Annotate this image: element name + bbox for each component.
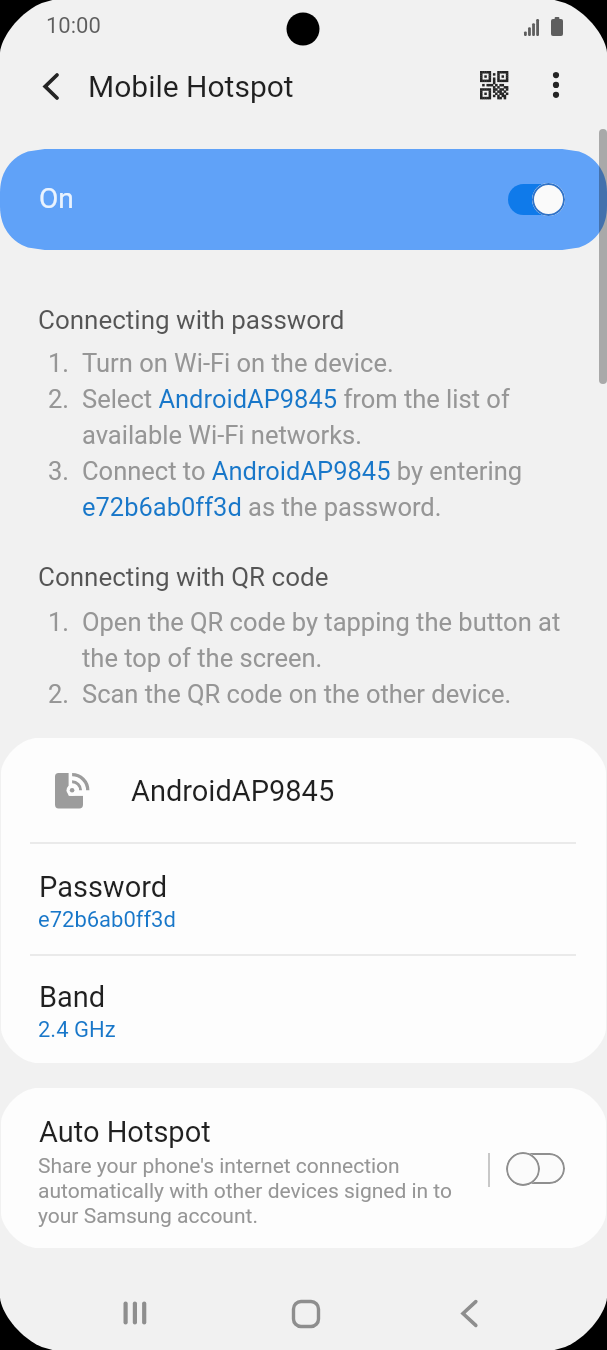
staticText: 10:00 bbox=[46, 13, 101, 39]
staticText: Band bbox=[39, 980, 106, 1014]
button[interactable]: Navigate up bbox=[38, 69, 74, 105]
staticText: Turn on Wi-Fi on the device. bbox=[82, 344, 394, 380]
button[interactable]: Auto Hotspot off bbox=[506, 1151, 565, 1186]
staticText: Open the QR code by tapping the button a… bbox=[82, 603, 562, 675]
button[interactable]: Band bbox=[1, 956, 606, 1063]
button[interactable]: Home bbox=[272, 1280, 338, 1346]
staticText: 3. bbox=[48, 452, 70, 488]
staticText: 1. bbox=[48, 344, 70, 380]
staticText: 2.4 GHz bbox=[38, 1017, 116, 1043]
button[interactable]: QR code bbox=[470, 61, 518, 109]
staticText: Connect to AndroidAP9845 by entering e72… bbox=[82, 452, 562, 524]
staticText: On bbox=[39, 182, 74, 215]
staticText: e72b6ab0ff3d bbox=[38, 907, 176, 933]
button[interactable]: More options bbox=[543, 72, 569, 98]
staticText: Mobile Hotspot bbox=[88, 69, 294, 104]
button[interactable]: On bbox=[0, 149, 607, 250]
button[interactable]: Back bbox=[441, 1280, 507, 1346]
staticText: Scan the QR code on the other device. bbox=[82, 675, 512, 711]
staticText: Auto Hotspot bbox=[39, 1115, 211, 1149]
staticText: Connecting with password bbox=[38, 305, 345, 335]
button[interactable]: Recent apps bbox=[102, 1280, 168, 1346]
staticText: Share your phone's internet connection a… bbox=[38, 1153, 458, 1228]
staticText: Password bbox=[39, 870, 168, 904]
button[interactable]: Password bbox=[1, 843, 606, 955]
staticText: 1. bbox=[48, 603, 70, 639]
button[interactable]: Auto Hotspot bbox=[1, 1088, 606, 1248]
staticText: 2. bbox=[48, 380, 70, 416]
staticText: 2. bbox=[48, 675, 70, 711]
staticText: Select AndroidAP9845 from the list of av… bbox=[82, 380, 562, 452]
staticText: AndroidAP9845 bbox=[131, 774, 335, 808]
button[interactable]: Mobile Hotspot on bbox=[508, 183, 565, 216]
button[interactable]: AndroidAP9845 bbox=[1, 738, 606, 843]
staticText: Connecting with QR code bbox=[38, 562, 329, 592]
